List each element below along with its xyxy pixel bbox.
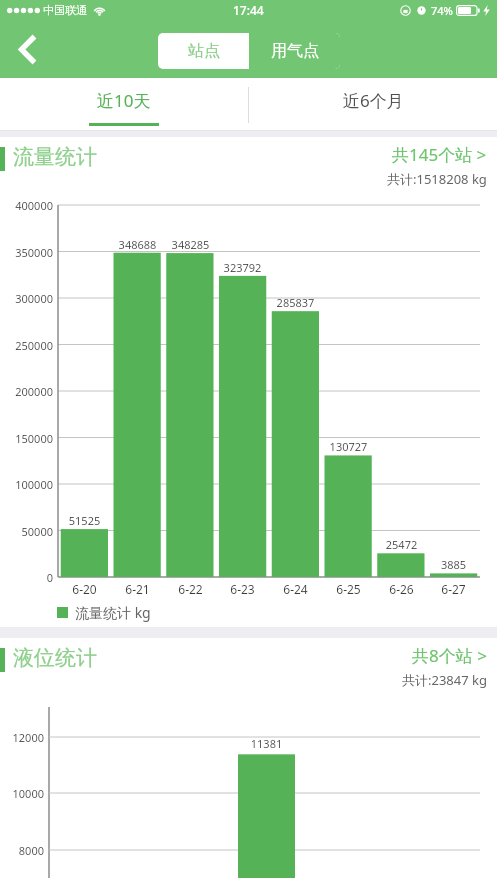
staticText: 近6个月 — [343, 89, 404, 112]
staticText: 400000 — [0, 198, 53, 213]
staticText: 用气点 — [271, 41, 319, 61]
staticText: 12000 — [0, 730, 44, 745]
staticText: 350000 — [0, 245, 53, 260]
staticText: 6-26 — [375, 581, 428, 597]
staticText: 0 — [0, 570, 53, 585]
staticText: 17:44 — [233, 2, 264, 18]
staticText: 25472 — [375, 537, 428, 552]
staticText: 6-23 — [216, 581, 269, 597]
staticText: 74% — [431, 3, 453, 18]
button[interactable]: 用气点 — [249, 33, 340, 69]
staticText: 共计:23847 kg — [402, 671, 487, 689]
staticText: 8000 — [0, 843, 44, 858]
button[interactable]: 共145个站 > — [392, 143, 487, 166]
staticText: 站点 — [188, 41, 220, 61]
button[interactable]: 近6个月 — [249, 78, 497, 131]
staticText: 150000 — [0, 431, 53, 446]
staticText: 10000 — [0, 786, 44, 801]
staticText: 共计:1518208 kg — [387, 170, 487, 188]
staticText: 300000 — [0, 291, 53, 306]
staticText: 流量统计 kg — [75, 603, 151, 622]
staticText: 6-24 — [269, 581, 322, 597]
staticText: 285837 — [269, 295, 322, 310]
staticText: 近10天 — [97, 89, 151, 112]
staticText: 6-25 — [322, 581, 375, 597]
button[interactable]: 近10天 — [0, 78, 248, 131]
staticText: 中国联通 — [43, 3, 87, 17]
button[interactable]: 共8个站 > — [412, 644, 487, 667]
staticText: 50000 — [0, 524, 53, 539]
staticText: 11381 — [238, 736, 295, 751]
staticText: 323792 — [216, 260, 269, 275]
staticText: 液位统计 — [13, 645, 97, 671]
staticText: 200000 — [0, 384, 53, 399]
staticText: 51525 — [58, 513, 111, 528]
staticText: 348285 — [164, 237, 217, 252]
staticText: 348688 — [111, 237, 164, 252]
staticText: 6-27 — [427, 581, 480, 597]
staticText: 3885 — [427, 557, 480, 572]
staticText: 250000 — [0, 338, 53, 353]
staticText: 100000 — [0, 477, 53, 492]
staticText: 130727 — [322, 439, 375, 454]
staticText: 6-20 — [58, 581, 111, 597]
button[interactable]: 站点 — [158, 33, 249, 69]
button[interactable]: Back — [4, 25, 52, 73]
staticText: 6-21 — [111, 581, 164, 597]
staticText: 流量统计 — [13, 144, 97, 170]
staticText: 6-22 — [164, 581, 217, 597]
